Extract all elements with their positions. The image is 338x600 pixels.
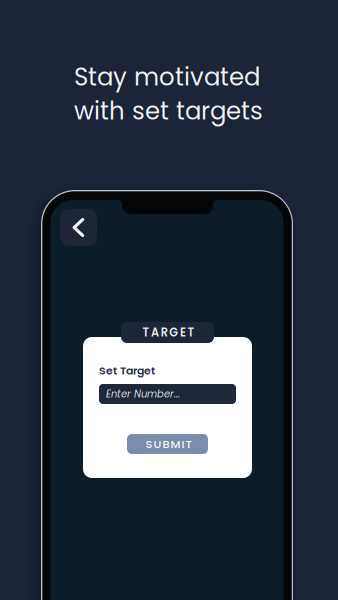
button[interactable]: Back (60, 209, 97, 246)
staticText: Stay motivated (74, 60, 260, 94)
staticText: with set targets (74, 94, 263, 128)
staticText: TARGET (142, 325, 194, 340)
staticText: SUBMIT (145, 436, 191, 452)
button[interactable]: SUBMIT (127, 434, 208, 454)
staticText: Enter Number... (106, 387, 180, 401)
staticText: Set Target (99, 363, 155, 378)
